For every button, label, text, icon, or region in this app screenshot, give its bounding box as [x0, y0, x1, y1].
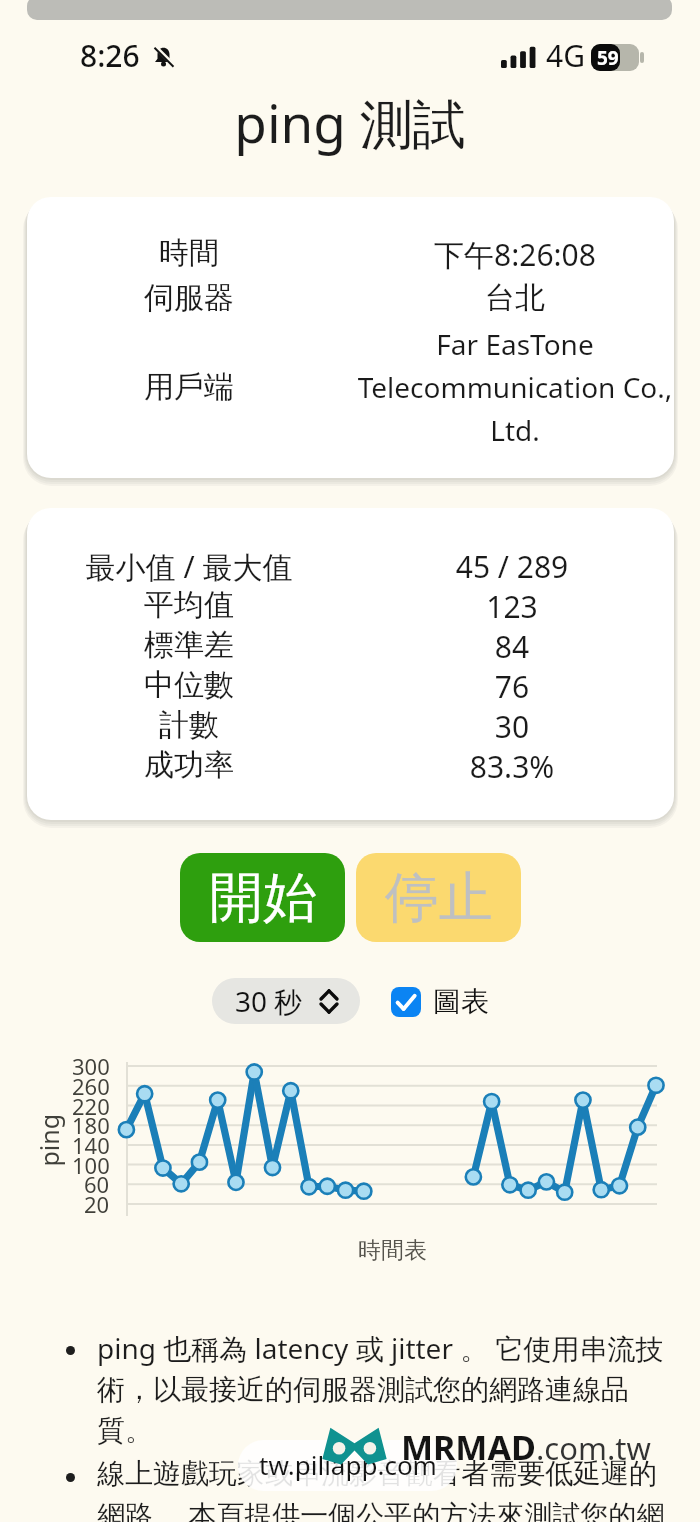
staticText: ping 也稱為 latency 或 jitter 。 它使用串流技術，以最接近…	[97, 1329, 675, 1449]
staticText: 線上遊戲玩家或串流影音觀看者需要低延遲的網路。 本頁提供一個公平的方法來測試您的…	[97, 1456, 675, 1522]
staticText: 60	[84, 1169, 110, 1199]
staticText: 76	[347, 666, 677, 707]
staticText: 8:26	[80, 35, 140, 76]
staticText: 123	[347, 586, 677, 627]
staticText: 最小值 / 最大值	[29, 546, 349, 587]
staticText: 83.3%	[347, 746, 677, 787]
staticText: 300	[72, 1051, 110, 1081]
staticText: 標準差	[29, 626, 349, 664]
staticText: 100	[72, 1150, 110, 1180]
staticText: 台北	[345, 279, 685, 317]
staticText: .com.tw	[536, 1427, 651, 1469]
staticText: 停止	[385, 864, 493, 932]
staticText: 260	[72, 1071, 110, 1101]
button[interactable]: 30 秒	[212, 978, 360, 1024]
staticText: ping	[31, 1113, 65, 1166]
staticText: 45 / 289	[347, 546, 677, 587]
staticText: 4G	[546, 35, 585, 76]
staticText: 59	[597, 45, 619, 71]
other: Silent mode	[151, 44, 176, 69]
staticText: 開始	[209, 864, 317, 932]
staticText: 用戶端	[39, 368, 339, 406]
staticText: 時間	[39, 234, 339, 272]
staticText: 30	[347, 706, 677, 747]
button[interactable]: 圖表	[391, 984, 489, 1019]
staticText: ping 測試	[0, 86, 700, 158]
staticText: 時間表	[358, 1236, 427, 1265]
staticText: 下午8:26:08	[345, 234, 685, 275]
staticText: 伺服器	[39, 279, 339, 317]
staticText: 平均值	[29, 586, 349, 624]
button[interactable]: 開始	[180, 853, 345, 942]
staticText: 30 秒	[235, 982, 303, 1020]
staticText: 成功率	[29, 746, 349, 784]
staticText: 84	[347, 626, 677, 667]
staticText: 140	[72, 1130, 110, 1160]
staticText: MRMAD	[401, 1424, 536, 1470]
staticText: tw.piliapp.com	[259, 1447, 437, 1482]
staticText: 180	[72, 1110, 110, 1140]
button[interactable]: 停止	[356, 853, 521, 942]
staticText: 中位數	[29, 666, 349, 704]
staticText: Far EasTone Telecommunication Co., Ltd.	[355, 325, 675, 449]
staticText: 20	[84, 1189, 110, 1219]
staticText: 計數	[29, 706, 349, 744]
staticText: 圖表	[433, 984, 489, 1019]
staticText: 220	[72, 1091, 110, 1121]
